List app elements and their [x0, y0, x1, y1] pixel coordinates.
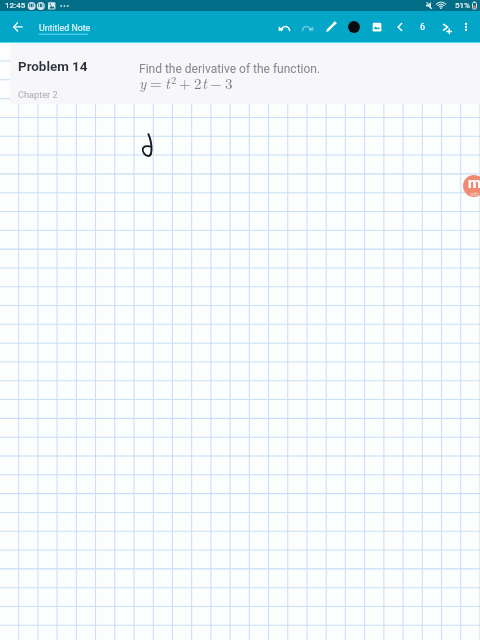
- button[interactable]: Previous page: [389, 16, 411, 38]
- staticText: 3: [225, 72, 233, 93]
- staticText: Chapter 2: [18, 89, 58, 100]
- button[interactable]: Untitled Note: [36, 16, 90, 38]
- button[interactable]: Math assistant: [463, 175, 480, 197]
- button[interactable]: Insert image: [366, 16, 388, 38]
- staticText: +: [179, 72, 191, 93]
- staticText: 2: [171, 72, 177, 87]
- staticText: −: [210, 72, 222, 93]
- staticText: t: [202, 72, 207, 93]
- button[interactable]: Undo: [273, 16, 295, 38]
- button[interactable]: Redo: [297, 16, 319, 38]
- staticText: 6: [420, 22, 426, 33]
- staticText: m: [468, 175, 480, 192]
- staticText: t: [165, 72, 170, 93]
- button[interactable]: Add page: [437, 16, 459, 38]
- staticText: 12:45: [5, 1, 26, 10]
- staticText: Untitled Note: [39, 23, 91, 33]
- staticText: Find the derivative of the function.: [139, 62, 321, 76]
- button[interactable]: Back: [7, 16, 29, 38]
- staticText: y: [139, 72, 147, 93]
- staticText: =: [150, 72, 162, 93]
- button[interactable]: 6: [412, 16, 434, 38]
- button[interactable]: Pen: [320, 16, 342, 38]
- staticText: ath: [470, 190, 479, 197]
- button[interactable]: Ink colour: [343, 16, 365, 38]
- staticText: 51%: [455, 1, 470, 10]
- staticText: Problem 14: [18, 59, 88, 75]
- staticText: 2: [194, 72, 202, 93]
- button[interactable]: More options: [455, 16, 477, 38]
